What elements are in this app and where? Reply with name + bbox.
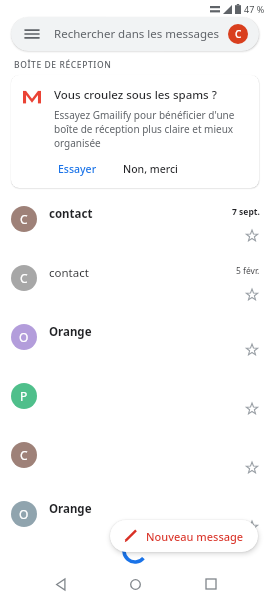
- staticText: 5 févr.: [236, 265, 260, 277]
- button[interactable]: Suivi: [244, 287, 260, 303]
- button[interactable]: C: [0, 257, 270, 316]
- staticText: BOÎTE DE RÉCEPTION: [14, 59, 112, 71]
- button[interactable]: Nouveau message: [110, 520, 258, 552]
- staticText: Essayez Gmailify pour bénéficier d'une b…: [54, 108, 247, 150]
- staticText: C: [235, 27, 242, 41]
- staticText: Rechercher dans les messages: [54, 26, 219, 42]
- button[interactable]: Applications récentes: [195, 568, 227, 600]
- button[interactable]: Retour: [44, 568, 76, 600]
- staticText: 7 sept.: [232, 206, 260, 218]
- button[interactable]: Accueil: [119, 568, 151, 600]
- staticText: Orange: [49, 324, 92, 340]
- button[interactable]: O: [0, 493, 270, 552]
- button[interactable]: Menu: [22, 24, 42, 44]
- staticText: Essayer: [58, 162, 97, 176]
- button[interactable]: Essayer: [54, 160, 101, 178]
- staticText: O: [19, 329, 29, 345]
- staticText: C: [20, 447, 28, 463]
- button[interactable]: Suivi: [244, 228, 260, 244]
- button[interactable]: Suivi: [244, 519, 260, 535]
- staticText: Vous croulez sous les spams ?: [54, 87, 217, 103]
- button[interactable]: Suivi: [244, 460, 260, 476]
- staticText: Non, merci: [123, 162, 178, 176]
- staticText: Orange: [49, 501, 92, 517]
- staticText: P: [20, 388, 28, 404]
- button[interactable]: Compte: [228, 24, 248, 44]
- button[interactable]: Suivi: [244, 401, 260, 417]
- staticText: 47 %: [244, 3, 265, 15]
- button[interactable]: Vous croulez sous les spams ?: [11, 75, 259, 188]
- button[interactable]: Non, merci: [119, 160, 182, 178]
- staticText: O: [19, 506, 29, 522]
- button[interactable]: C: [0, 434, 270, 493]
- button[interactable]: Menu: [11, 17, 259, 51]
- staticText: C: [20, 270, 28, 286]
- staticText: Nouveau message: [146, 529, 244, 544]
- staticText: contact: [49, 206, 93, 222]
- button[interactable]: O: [0, 316, 270, 375]
- staticText: C: [20, 211, 28, 227]
- button[interactable]: P: [0, 375, 270, 434]
- staticText: contact: [49, 265, 89, 281]
- button[interactable]: Suivi: [244, 342, 260, 358]
- button[interactable]: C: [0, 198, 270, 257]
